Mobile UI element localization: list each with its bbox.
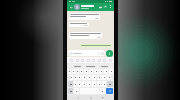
button[interactable]	[82, 81, 86, 87]
button[interactable]	[69, 32, 102, 39]
button[interactable]	[87, 81, 91, 87]
button[interactable]	[69, 22, 89, 27]
button[interactable]: Emoji category 6	[97, 58, 101, 62]
button[interactable]	[109, 69, 113, 74]
button[interactable]: Emoji category 3	[80, 58, 84, 62]
button[interactable]	[100, 88, 105, 94]
button[interactable]: Voice call	[103, 5, 108, 10]
button[interactable]	[97, 75, 101, 80]
button[interactable]: Backspace	[107, 81, 113, 87]
button[interactable]	[74, 66, 81, 67]
button[interactable]	[92, 75, 96, 80]
button[interactable]	[72, 69, 75, 74]
button[interactable]	[76, 69, 79, 74]
button[interactable]: Back	[76, 96, 80, 100]
button[interactable]: More options	[108, 5, 112, 9]
button[interactable]	[101, 66, 108, 67]
button[interactable]: Video call	[98, 5, 103, 10]
button[interactable]	[84, 69, 88, 74]
button[interactable]	[80, 69, 83, 74]
button[interactable]	[68, 50, 105, 56]
button[interactable]: Contact photo	[74, 4, 80, 10]
button[interactable]	[68, 69, 71, 74]
button[interactable]: Emoji category 4	[86, 58, 90, 62]
button[interactable]	[86, 66, 95, 67]
button[interactable]: Send voice message	[106, 50, 113, 57]
button[interactable]	[74, 81, 77, 87]
button[interactable]: Back	[69, 5, 74, 10]
button[interactable]	[104, 69, 108, 74]
button[interactable]	[92, 81, 96, 87]
button[interactable]	[89, 69, 93, 74]
button[interactable]: Recent apps	[101, 96, 105, 100]
button[interactable]	[82, 75, 86, 80]
button[interactable]	[99, 69, 103, 74]
button[interactable]	[78, 75, 81, 80]
button[interactable]	[74, 88, 79, 94]
button[interactable]: Emoji category 2	[75, 58, 79, 62]
button[interactable]: Emoji category 5	[91, 58, 95, 62]
button[interactable]	[80, 44, 112, 47]
button[interactable]	[102, 75, 106, 80]
button[interactable]	[107, 75, 111, 80]
button[interactable]	[87, 75, 91, 80]
button[interactable]	[69, 13, 100, 20]
button[interactable]: Home	[89, 96, 93, 100]
button[interactable]: Emoji category 8	[108, 58, 112, 62]
button[interactable]	[81, 5, 98, 9]
button[interactable]: Emoji category 7	[102, 58, 106, 62]
button[interactable]	[102, 81, 106, 87]
button[interactable]: Enter	[106, 88, 113, 94]
button[interactable]: Shift	[68, 81, 73, 87]
button[interactable]	[70, 75, 73, 80]
button[interactable]	[94, 69, 98, 74]
button[interactable]	[97, 81, 101, 87]
button[interactable]	[74, 75, 77, 80]
button[interactable]: Emoji category 1	[69, 58, 73, 62]
button[interactable]	[78, 81, 81, 87]
button[interactable]: Symbols	[68, 88, 73, 94]
